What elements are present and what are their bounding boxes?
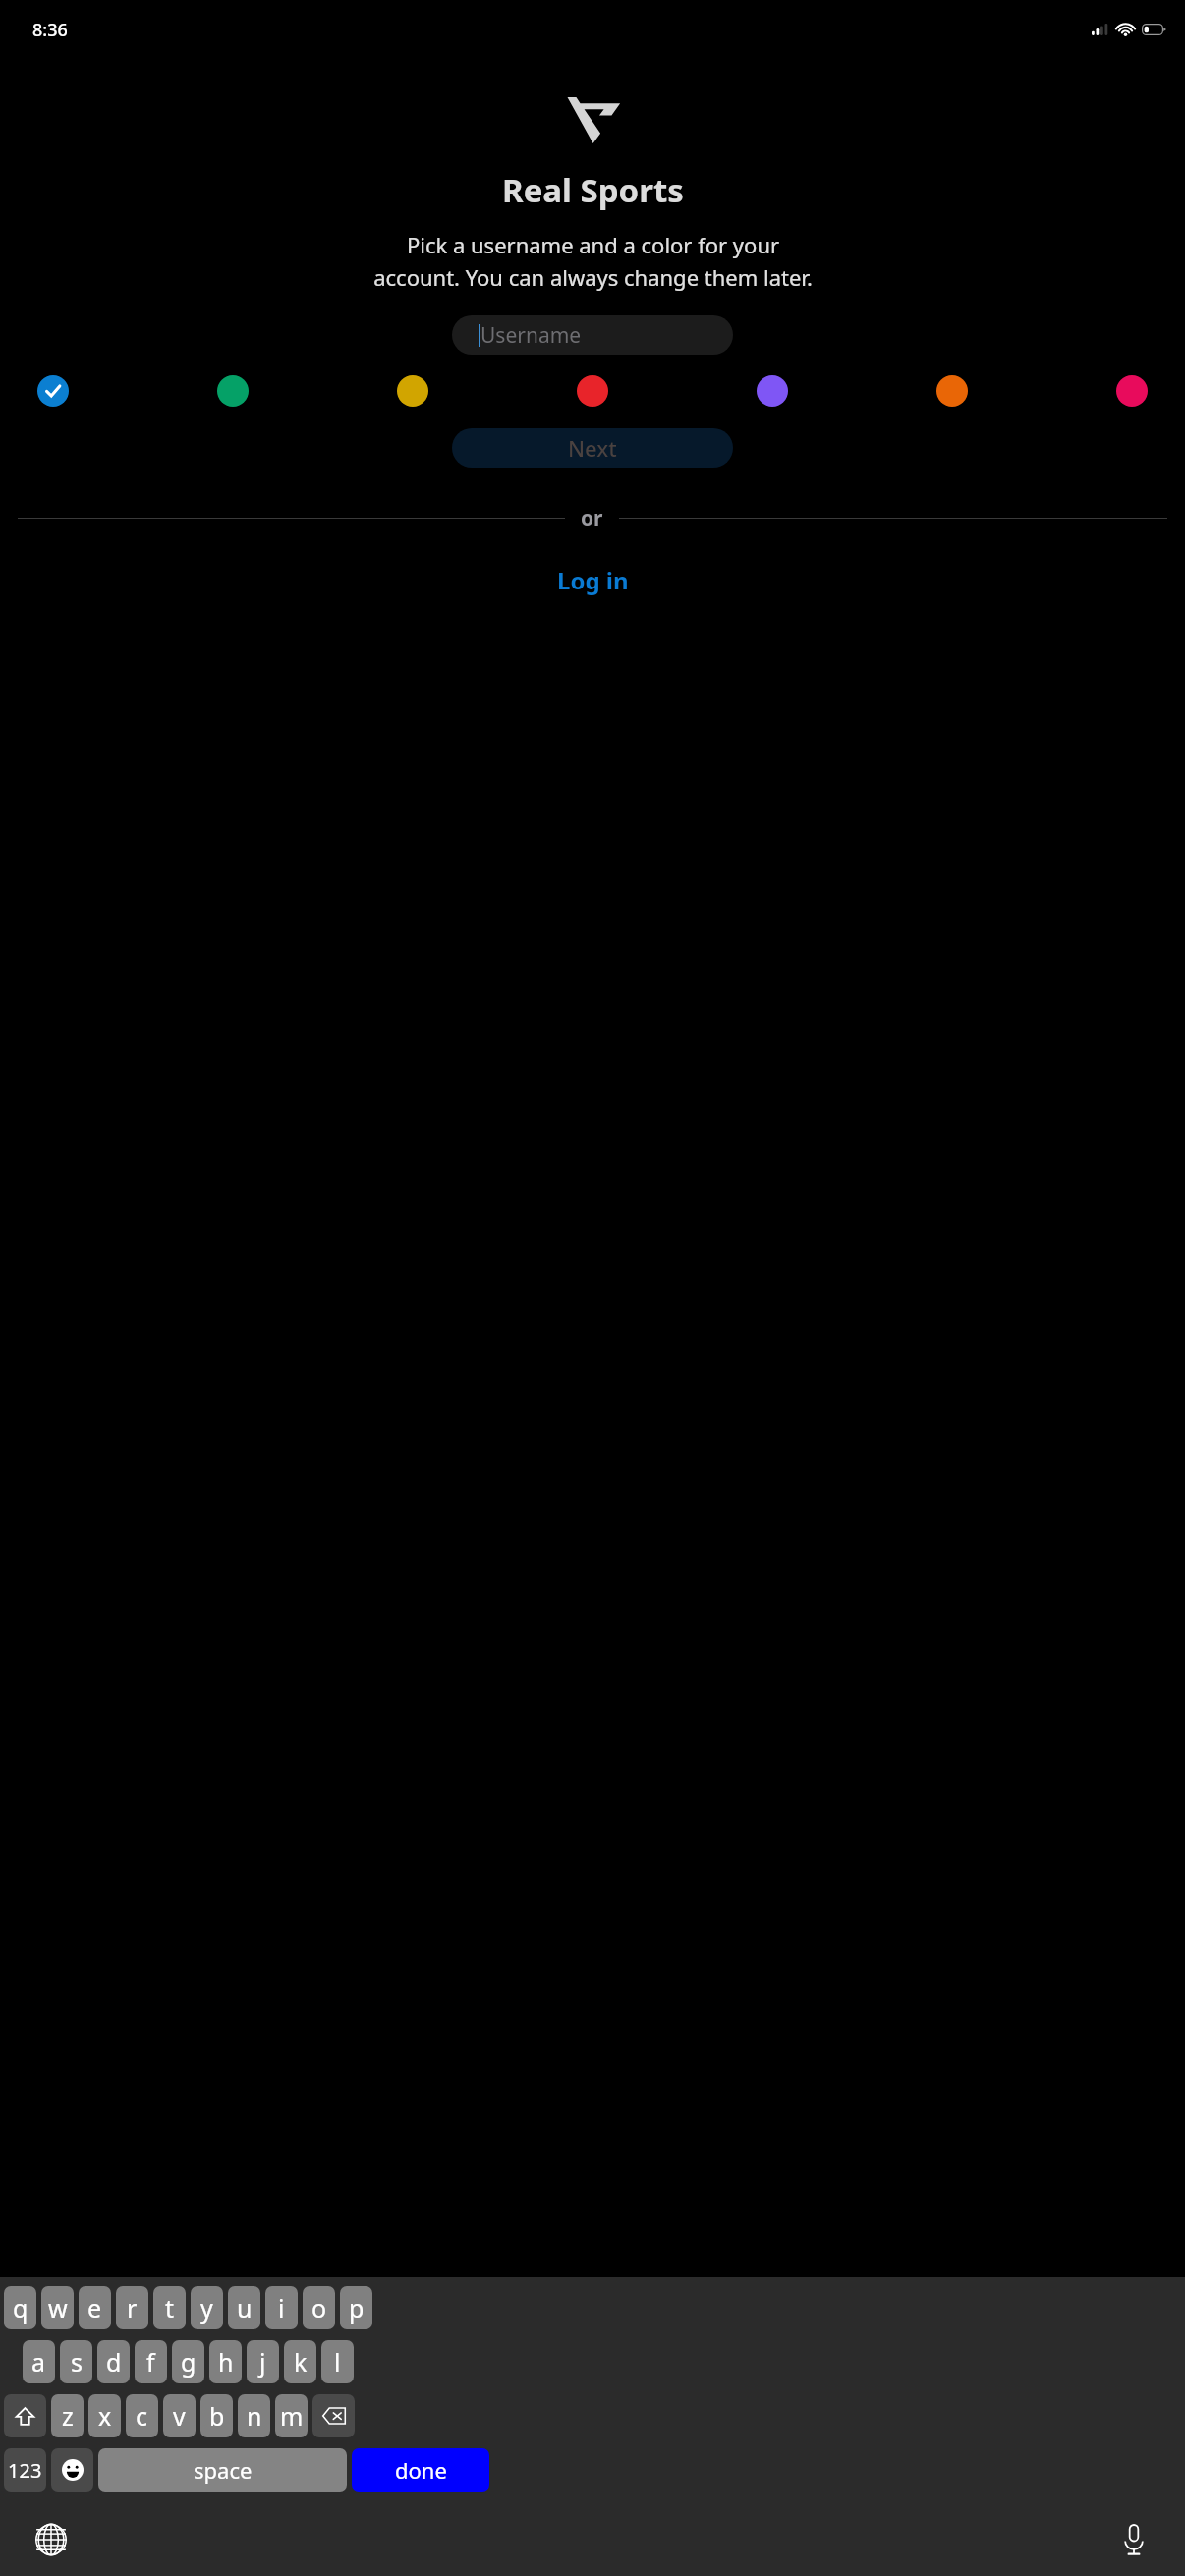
button[interactable]: Color 7: [1116, 375, 1148, 407]
staticText: u: [237, 2291, 253, 2324]
button[interactable]: o: [303, 2286, 335, 2329]
button[interactable]: w: [41, 2286, 74, 2329]
staticText: 8:36: [32, 18, 68, 42]
button[interactable]: u: [228, 2286, 260, 2329]
button[interactable]: Next: [452, 428, 733, 468]
staticText: v: [173, 2399, 186, 2433]
button[interactable]: v: [163, 2394, 196, 2437]
staticText: done: [395, 2455, 447, 2485]
button[interactable]: b: [200, 2394, 233, 2437]
staticText: d: [106, 2345, 122, 2379]
button[interactable]: Username: [452, 315, 733, 355]
staticText: m: [280, 2399, 304, 2433]
staticText: x: [98, 2399, 112, 2433]
staticText: y: [200, 2291, 213, 2324]
staticText: i: [278, 2291, 285, 2324]
button[interactable]: m: [275, 2394, 308, 2437]
staticText: r: [127, 2291, 138, 2324]
button[interactable]: a: [23, 2340, 55, 2383]
staticText: g: [181, 2345, 197, 2379]
button[interactable]: Color 6: [936, 375, 968, 407]
button[interactable]: t: [153, 2286, 186, 2329]
button[interactable]: x: [88, 2394, 121, 2437]
button[interactable]: d: [97, 2340, 130, 2383]
button[interactable]: Emoji: [51, 2448, 93, 2492]
button[interactable]: n: [238, 2394, 270, 2437]
button[interactable]: q: [4, 2286, 36, 2329]
staticText: Real Sports: [502, 168, 684, 212]
staticText: h: [218, 2345, 234, 2379]
button[interactable]: space: [98, 2448, 347, 2492]
staticText: l: [334, 2345, 341, 2379]
button[interactable]: Color 5: [757, 375, 788, 407]
button[interactable]: Voice input: [1110, 2516, 1157, 2563]
button[interactable]: Backspace: [312, 2394, 355, 2437]
staticText: k: [294, 2345, 308, 2379]
staticText: q: [13, 2291, 28, 2324]
staticText: Username: [480, 321, 582, 350]
button[interactable]: Shift: [4, 2394, 46, 2437]
staticText: f: [146, 2345, 155, 2379]
staticText: 123: [8, 2457, 42, 2484]
button[interactable]: Color 1: [37, 375, 69, 407]
staticText: z: [62, 2399, 74, 2433]
staticText: c: [136, 2399, 148, 2433]
button[interactable]: j: [247, 2340, 279, 2383]
button[interactable]: g: [172, 2340, 204, 2383]
button[interactable]: p: [340, 2286, 372, 2329]
staticText: p: [349, 2291, 365, 2324]
button[interactable]: l: [321, 2340, 354, 2383]
staticText: w: [48, 2291, 68, 2324]
staticText: or: [581, 504, 603, 532]
button[interactable]: e: [79, 2286, 111, 2329]
button[interactable]: y: [191, 2286, 223, 2329]
button[interactable]: Log in: [545, 560, 641, 600]
staticText: t: [165, 2291, 175, 2324]
button[interactable]: s: [60, 2340, 92, 2383]
button[interactable]: i: [265, 2286, 298, 2329]
button[interactable]: Color 4: [577, 375, 608, 407]
staticText: o: [311, 2291, 327, 2324]
button[interactable]: f: [135, 2340, 167, 2383]
button[interactable]: h: [209, 2340, 242, 2383]
staticText: a: [31, 2345, 46, 2379]
button[interactable]: Color 3: [397, 375, 428, 407]
staticText: b: [209, 2399, 225, 2433]
button[interactable]: c: [126, 2394, 158, 2437]
button[interactable]: Change language: [28, 2516, 75, 2563]
staticText: s: [71, 2345, 83, 2379]
staticText: e: [87, 2291, 102, 2324]
button[interactable]: Color 2: [217, 375, 249, 407]
staticText: Log in: [557, 564, 629, 596]
staticText: n: [247, 2399, 262, 2433]
staticText: j: [259, 2345, 266, 2379]
button[interactable]: done: [352, 2448, 489, 2492]
staticText: Next: [568, 433, 617, 463]
button[interactable]: k: [284, 2340, 316, 2383]
button[interactable]: 123: [4, 2448, 46, 2492]
button[interactable]: z: [51, 2394, 84, 2437]
staticText: Pick a username and a color for your acc…: [373, 230, 813, 292]
button[interactable]: r: [116, 2286, 148, 2329]
staticText: space: [194, 2455, 253, 2485]
